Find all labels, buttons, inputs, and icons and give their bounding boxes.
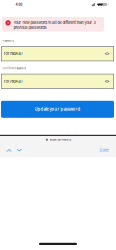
button[interactable]: account.bellmedia.ca <box>0 136 116 143</box>
staticText: Update your password <box>34 107 80 112</box>
staticText: Confirm Password <box>2 67 26 70</box>
button[interactable]: Update your password <box>1 101 114 118</box>
button[interactable]: Done <box>99 148 108 153</box>
staticText: account.bellmedia.ca <box>50 138 71 141</box>
staticText: 4:02 <box>15 3 22 6</box>
staticText: Done <box>99 148 108 153</box>
staticText: 101780Aa.! <box>4 79 23 84</box>
staticText: 101780Aa.! <box>4 51 23 56</box>
staticText: Password <box>2 39 14 42</box>
button[interactable]: Next field <box>16 148 22 152</box>
button[interactable]: Previous field <box>6 148 12 152</box>
staticText: Your new password must be different than… <box>13 20 95 30</box>
